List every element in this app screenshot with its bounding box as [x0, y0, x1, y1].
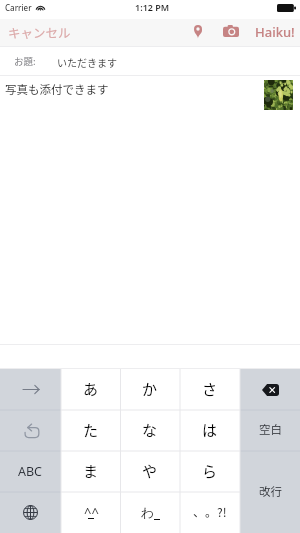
button[interactable]: 、。?! — [180, 492, 240, 533]
button[interactable]: わ — [120, 492, 180, 533]
staticText: お題: — [14, 54, 36, 68]
button[interactable]: あ — [61, 369, 120, 410]
button[interactable]: か — [120, 369, 180, 410]
staticText: は — [202, 419, 218, 441]
staticText: た — [83, 419, 99, 441]
button[interactable]: 空白 — [240, 410, 300, 451]
button[interactable]: さ — [180, 369, 240, 410]
button[interactable]: は — [180, 410, 240, 451]
staticText: 、。?! — [193, 503, 227, 520]
button[interactable]: な — [120, 410, 180, 451]
button[interactable]: Next — [0, 369, 61, 410]
button[interactable]: Globe — [0, 492, 61, 533]
button[interactable]: た — [61, 410, 120, 451]
staticText: ま — [83, 460, 99, 482]
staticText: ^^ — [84, 503, 99, 517]
button[interactable]: 改行 — [240, 451, 300, 533]
staticText: わ — [141, 504, 155, 520]
staticText: ABC — [18, 463, 43, 480]
staticText: キャンセル — [8, 23, 71, 41]
staticText: Haiku! — [255, 23, 295, 41]
staticText: 1:12 PM — [135, 1, 170, 13]
button[interactable]: ま — [61, 451, 120, 492]
staticText: や — [142, 460, 158, 482]
staticText: あ — [83, 378, 99, 400]
staticText: 空白 — [259, 421, 282, 438]
staticText: 写真も添付できます — [5, 81, 109, 98]
staticText: か — [142, 378, 158, 400]
staticText: Carrier — [5, 2, 32, 13]
button[interactable]: Haiku! — [254, 19, 296, 45]
staticText: いただきます — [57, 55, 117, 69]
button[interactable]: ^^ — [61, 492, 120, 533]
staticText: ら — [202, 460, 218, 482]
staticText: 改行 — [259, 483, 282, 500]
button[interactable]: Delete — [240, 369, 300, 410]
button[interactable]: や — [120, 451, 180, 492]
staticText: な — [142, 419, 158, 441]
button[interactable]: Location — [187, 21, 209, 43]
button[interactable]: Globe — [0, 451, 61, 492]
button[interactable]: Camera — [218, 20, 244, 42]
button[interactable]: キャンセル — [8, 20, 71, 46]
staticText: さ — [202, 378, 218, 400]
button[interactable]: ら — [180, 451, 240, 492]
button[interactable]: Undo — [0, 410, 61, 451]
